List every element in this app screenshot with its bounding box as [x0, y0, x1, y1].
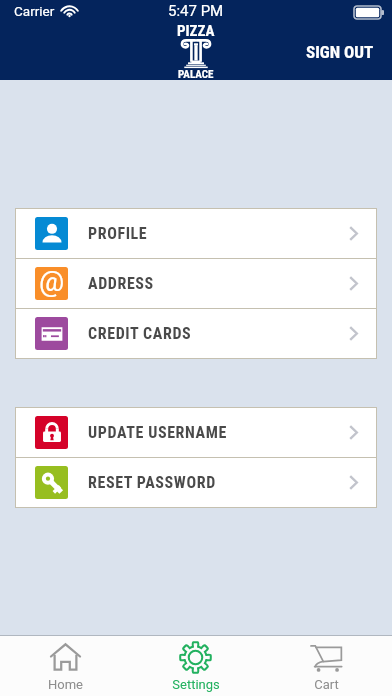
button[interactable]: RESET PASSWORD: [16, 458, 376, 507]
staticText: PALACE: [178, 68, 214, 81]
button[interactable]: Cart: [261, 636, 392, 696]
staticText: Carrier: [14, 3, 55, 19]
staticText: Settings: [172, 677, 220, 692]
staticText: CREDIT CARDS: [88, 324, 192, 343]
button[interactable]: UPDATE USERNAME: [16, 408, 376, 457]
button[interactable]: CREDIT CARDS: [16, 309, 376, 358]
staticText: PROFILE: [88, 224, 148, 243]
button[interactable]: SIGN OUT: [288, 32, 392, 72]
button[interactable]: @: [16, 259, 376, 308]
staticText: ADDRESS: [88, 274, 154, 293]
button[interactable]: Settings: [130, 636, 261, 696]
staticText: RESET PASSWORD: [88, 473, 216, 492]
staticText: Home: [48, 677, 83, 692]
staticText: UPDATE USERNAME: [88, 423, 227, 442]
button[interactable]: Home: [0, 636, 130, 696]
staticText: 5:47 PM: [168, 2, 224, 20]
staticText: SIGN OUT: [306, 42, 374, 62]
staticText: @: [39, 267, 65, 298]
staticText: PIZZA: [177, 22, 215, 40]
staticText: Cart: [314, 677, 339, 692]
button[interactable]: PROFILE: [16, 209, 376, 258]
